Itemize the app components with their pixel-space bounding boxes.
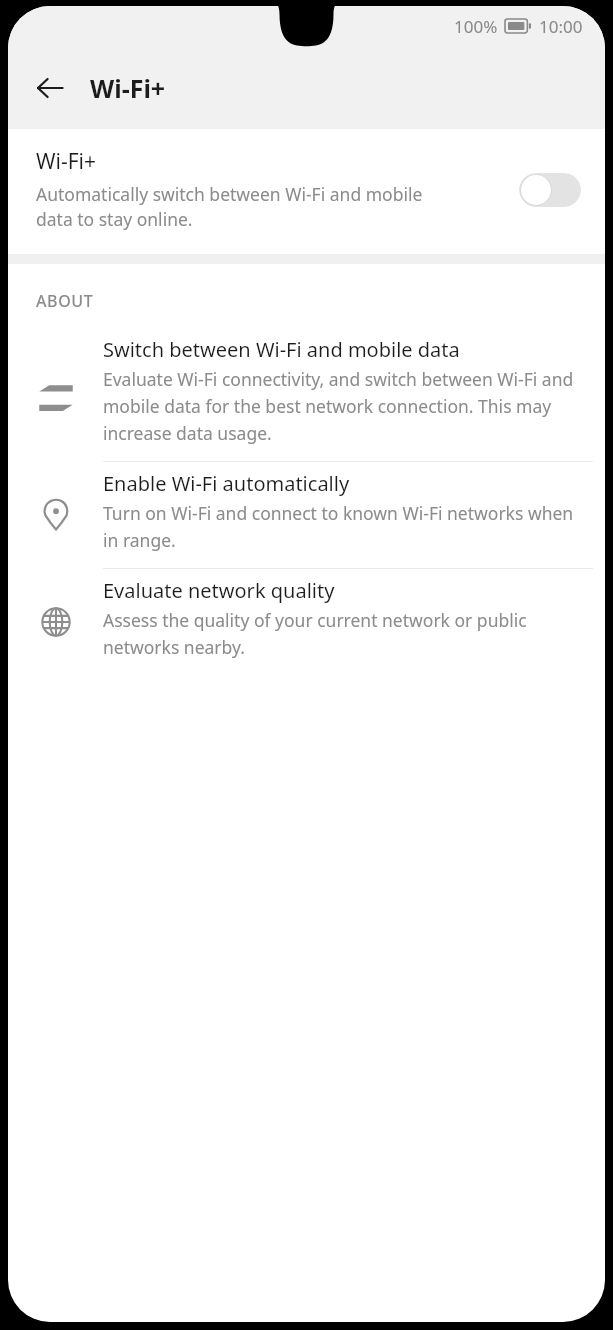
other: Location xyxy=(8,496,103,534)
other: Network xyxy=(8,603,103,641)
button[interactable]: Location xyxy=(8,462,605,568)
staticText: Wi-Fi+ xyxy=(36,147,97,176)
button[interactable]: Back xyxy=(22,60,78,116)
staticText: Enable Wi-Fi automatically xyxy=(103,470,350,497)
staticText: Evaluate Wi-Fi connectivity, and switch … xyxy=(103,367,577,445)
other: Switch between networks xyxy=(8,376,103,414)
staticText: Automatically switch between Wi-Fi and m… xyxy=(36,182,460,232)
button[interactable]: Wi-Fi+ toggle xyxy=(519,173,581,207)
staticText: Turn on Wi-Fi and connect to known Wi-Fi… xyxy=(103,501,577,552)
button[interactable]: Switch between networks xyxy=(8,328,605,461)
staticText: Wi-Fi+ xyxy=(90,71,166,105)
staticText: Evaluate network quality xyxy=(103,577,335,604)
button[interactable]: Network xyxy=(8,569,605,675)
staticText: ABOUT xyxy=(36,290,94,312)
staticText: Switch between Wi-Fi and mobile data xyxy=(103,336,460,363)
staticText: Assess the quality of your current netwo… xyxy=(103,608,577,659)
button[interactable]: Wi-Fi+ xyxy=(8,129,605,254)
staticText: 100% xyxy=(454,15,498,38)
staticText: 10:00 xyxy=(539,15,583,38)
